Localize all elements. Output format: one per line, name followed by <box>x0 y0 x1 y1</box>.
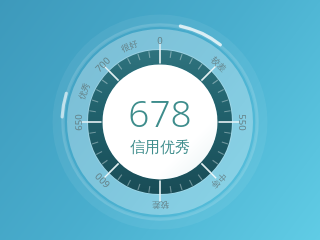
staticText: 650 <box>72 114 85 131</box>
staticText: 678 <box>128 87 192 137</box>
staticText: 700 <box>92 54 113 75</box>
staticText: 很好 <box>120 38 139 55</box>
staticText: 中等 <box>209 171 228 190</box>
staticText: 0 <box>157 34 163 47</box>
staticText: 600 <box>92 170 113 191</box>
staticText: 较差 <box>209 55 228 74</box>
button[interactable]: Credit score 678, 信用优秀 <box>100 87 220 161</box>
staticText: 较差 <box>152 199 169 210</box>
staticText: 信用优秀 <box>130 138 190 157</box>
staticText: 550 <box>236 114 249 131</box>
staticText: 优秀 <box>76 82 93 101</box>
